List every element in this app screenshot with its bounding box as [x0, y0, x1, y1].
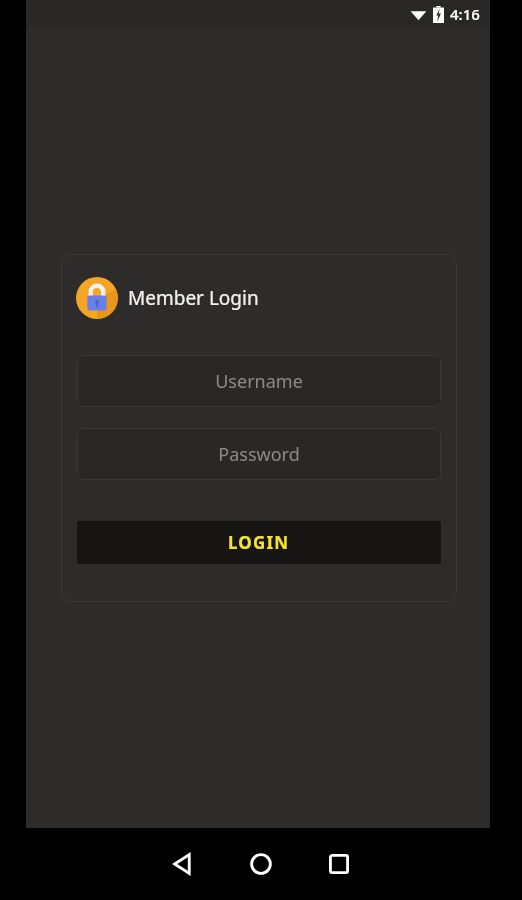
staticText: 4:16	[450, 4, 480, 24]
button[interactable]: LOGIN	[77, 521, 441, 564]
staticText: Password	[218, 442, 300, 467]
button[interactable]: Home	[224, 828, 298, 900]
button[interactable]: Recent apps	[302, 828, 376, 900]
staticText: LOGIN	[228, 531, 290, 554]
button[interactable]: Username	[77, 355, 441, 407]
button[interactable]: Password	[77, 428, 441, 480]
button[interactable]: Back	[146, 828, 220, 900]
staticText: Member Login	[128, 285, 259, 311]
staticText: Username	[215, 369, 303, 394]
